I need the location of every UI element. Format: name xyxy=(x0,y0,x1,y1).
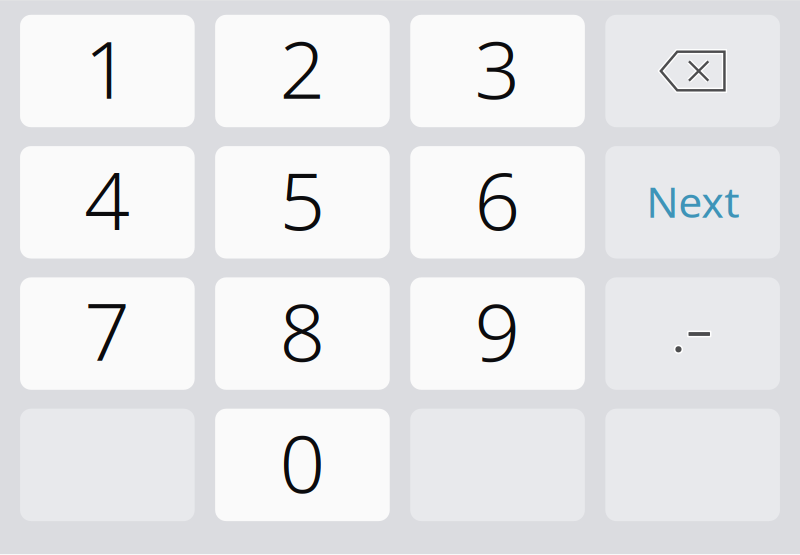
button[interactable]: Period or hyphen xyxy=(605,277,780,390)
button[interactable]: Delete xyxy=(605,15,780,127)
button[interactable]: 2 xyxy=(215,15,390,127)
staticText: 5 xyxy=(279,146,325,252)
button[interactable]: 5 xyxy=(215,146,390,258)
staticText: 1 xyxy=(84,15,130,121)
staticText: 8 xyxy=(279,277,325,383)
staticText: Next xyxy=(646,173,739,230)
staticText: 4 xyxy=(84,146,130,252)
button[interactable]: Next xyxy=(605,146,780,258)
button[interactable]: 7 xyxy=(20,277,195,390)
button[interactable]: 9 xyxy=(410,277,585,390)
button[interactable]: 4 xyxy=(20,146,195,258)
staticText: 3 xyxy=(475,15,521,121)
staticText: 6 xyxy=(475,146,521,252)
button[interactable]: 1 xyxy=(20,15,195,127)
staticText: 9 xyxy=(475,277,521,383)
staticText: 2 xyxy=(279,15,325,121)
staticText: 0 xyxy=(279,408,325,515)
staticText: 7 xyxy=(84,277,130,383)
button[interactable]: 6 xyxy=(410,146,585,258)
button[interactable]: 0 xyxy=(215,409,390,521)
button[interactable]: 3 xyxy=(410,15,585,127)
button[interactable]: 8 xyxy=(215,277,390,390)
